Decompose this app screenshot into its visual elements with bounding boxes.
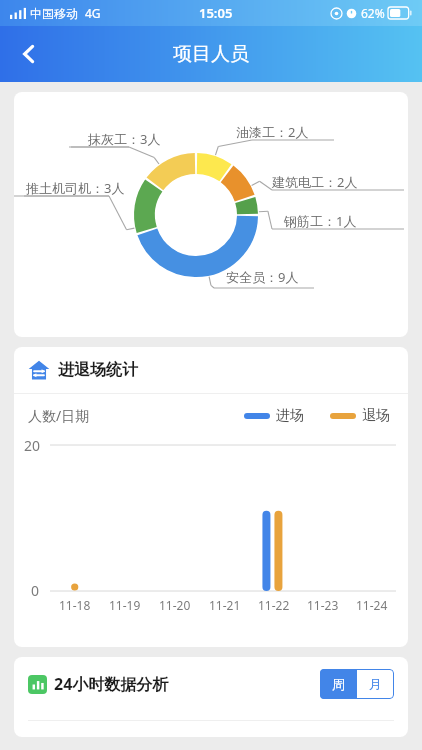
staticText: 11-18 xyxy=(59,597,91,613)
staticText: 24小时数据分析 xyxy=(54,673,169,695)
staticText: 15:05 xyxy=(199,4,233,22)
staticText: 中国移动 xyxy=(30,6,78,21)
staticText: 11-21 xyxy=(209,597,241,613)
staticText: 推土机司机：3人 xyxy=(26,179,125,197)
staticText: 62% xyxy=(361,5,385,21)
button[interactable]: 周 xyxy=(320,669,357,699)
staticText: 20 xyxy=(24,436,41,455)
staticText: 11-19 xyxy=(109,597,141,613)
staticText: 项目人员 xyxy=(173,42,249,66)
staticText: 退场 xyxy=(362,407,390,425)
staticText: 周 xyxy=(332,676,345,692)
staticText: 进退场统计 xyxy=(58,360,138,380)
staticText: 安全员：9人 xyxy=(226,268,299,286)
staticText: 11-23 xyxy=(307,597,339,613)
staticText: 月 xyxy=(369,676,382,692)
button[interactable]: 月 xyxy=(357,669,394,699)
staticText: 11-22 xyxy=(258,597,290,613)
staticText: 人数/日期 xyxy=(28,406,90,425)
staticText: 建筑电工：2人 xyxy=(272,173,358,191)
staticText: 4G xyxy=(85,5,101,21)
staticText: 抹灰工：3人 xyxy=(88,130,161,148)
staticText: 钢筋工：1人 xyxy=(284,212,357,230)
button[interactable]: Back xyxy=(6,31,52,77)
staticText: 11-24 xyxy=(356,597,388,613)
staticText: 11-20 xyxy=(159,597,191,613)
staticText: 进场 xyxy=(276,407,304,425)
staticText: 0 xyxy=(31,581,40,600)
staticText: 油漆工：2人 xyxy=(236,123,309,141)
